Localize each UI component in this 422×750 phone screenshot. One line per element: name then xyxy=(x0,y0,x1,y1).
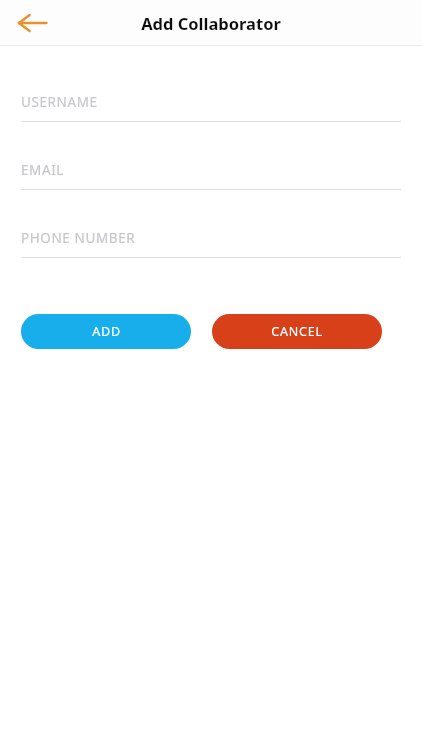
button[interactable]: EMAIL xyxy=(21,148,401,190)
button[interactable]: ADD xyxy=(21,314,191,349)
staticText: ADD xyxy=(92,323,121,340)
button[interactable]: Back xyxy=(6,0,58,46)
button[interactable]: CANCEL xyxy=(212,314,382,349)
staticText: CANCEL xyxy=(271,323,323,340)
staticText: USERNAME xyxy=(21,93,98,111)
button[interactable]: USERNAME xyxy=(21,80,401,122)
staticText: PHONE NUMBER xyxy=(21,229,136,247)
staticText: EMAIL xyxy=(21,161,65,179)
button[interactable]: PHONE NUMBER xyxy=(21,216,401,258)
staticText: Add Collaborator xyxy=(141,12,281,34)
